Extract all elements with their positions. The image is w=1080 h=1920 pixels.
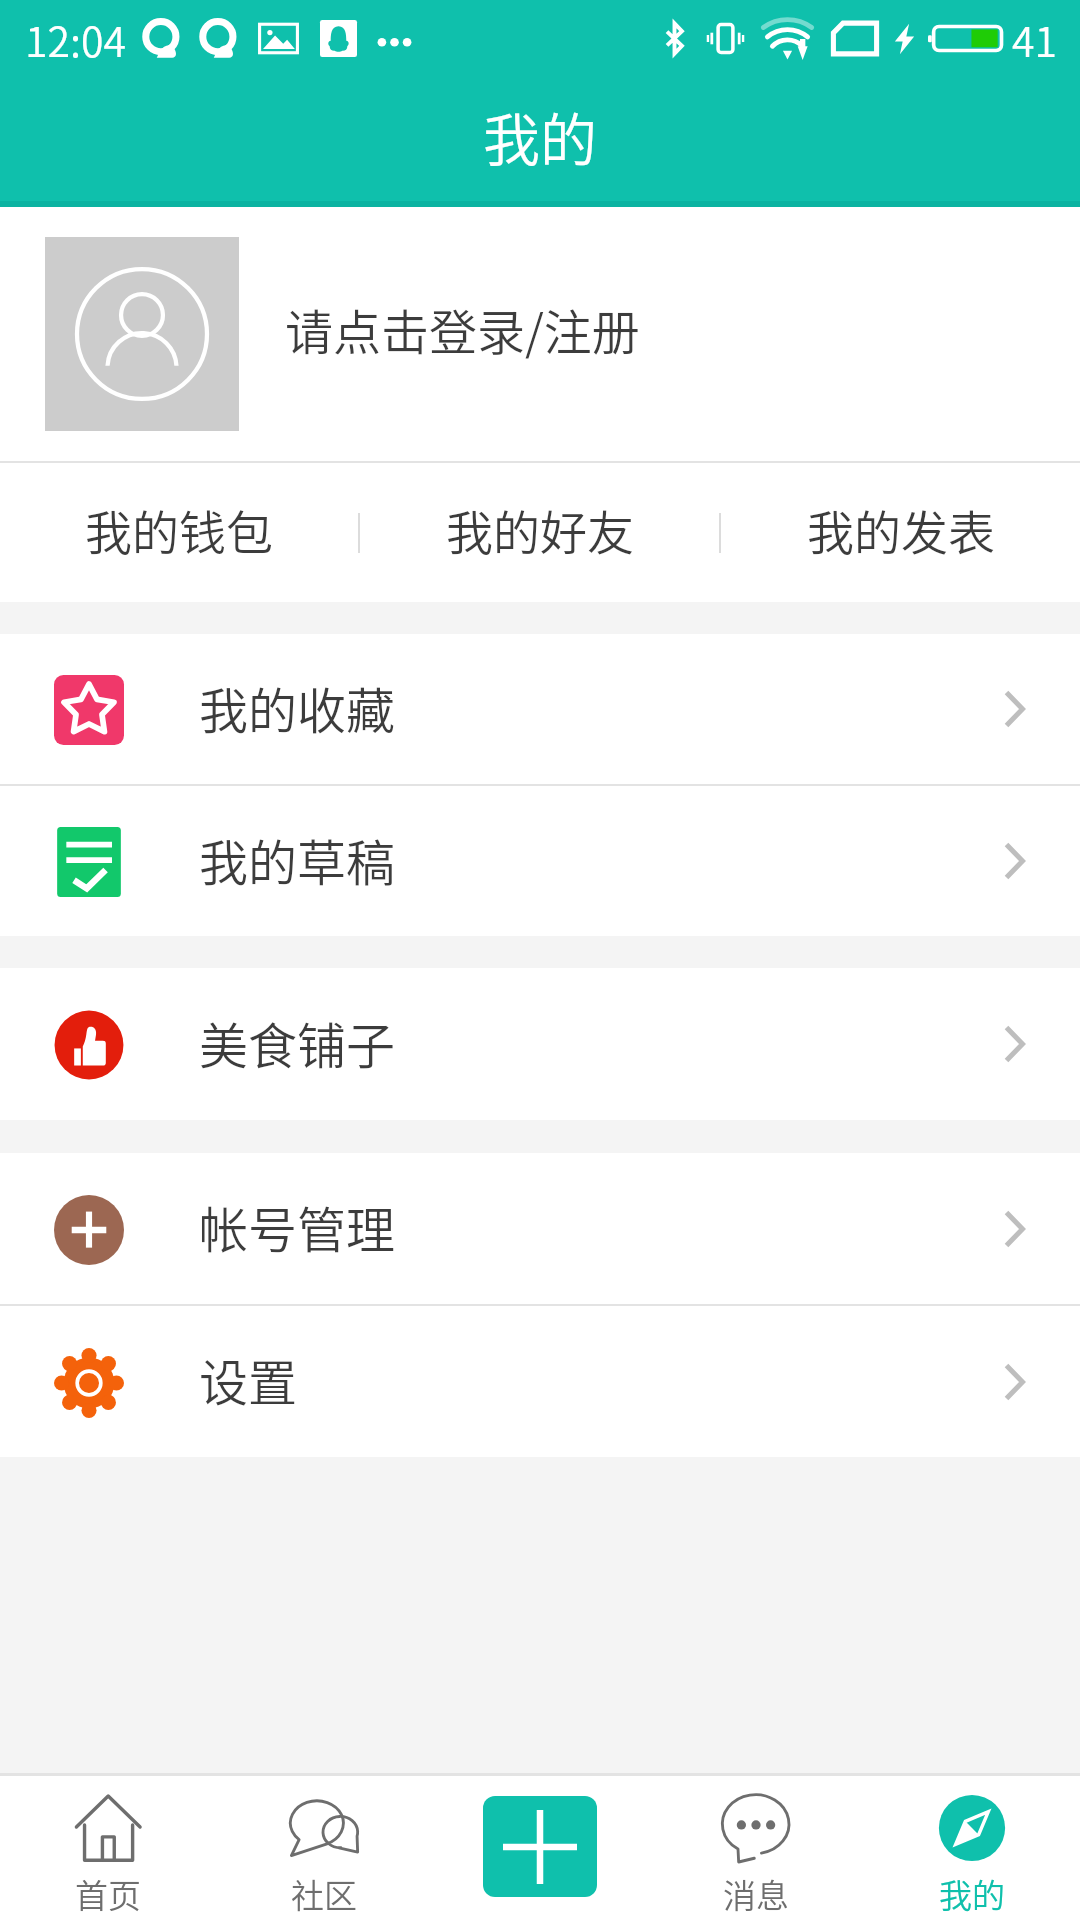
button[interactable]: 设置 xyxy=(0,1306,1080,1457)
button[interactable]: 我的发表 xyxy=(721,463,1080,602)
button[interactable]: 我的 xyxy=(864,1776,1080,1920)
staticText: 我的发表 xyxy=(807,495,995,563)
staticText: 我的 xyxy=(483,95,597,178)
button[interactable]: 美食铺子 xyxy=(0,968,1080,1120)
staticText: 消息 xyxy=(723,1870,789,1918)
button[interactable]: 我的好友 xyxy=(360,463,719,602)
staticText: 我的收藏 xyxy=(199,672,396,743)
staticText: 社区 xyxy=(291,1870,357,1918)
button[interactable]: 我的草稿 xyxy=(0,786,1080,936)
button[interactable]: 请点击登录/注册 xyxy=(0,207,1080,461)
staticText: 请点击登录/注册 xyxy=(285,294,640,364)
staticText: 我的草稿 xyxy=(199,824,396,895)
staticText: 美食铺子 xyxy=(199,1007,396,1078)
staticText: 我的 xyxy=(939,1870,1005,1918)
staticText: 设置 xyxy=(199,1344,298,1415)
button[interactable]: 我的收藏 xyxy=(0,634,1080,784)
staticText: 首页 xyxy=(75,1870,141,1918)
button[interactable]: 社区 xyxy=(216,1776,432,1920)
button[interactable]: 帐号管理 xyxy=(0,1153,1080,1304)
staticText: 12:04 xyxy=(25,9,127,68)
staticText: 帐号管理 xyxy=(199,1191,396,1262)
staticText: 41 xyxy=(1012,9,1058,68)
staticText: 我的好友 xyxy=(446,495,634,563)
button[interactable]: 消息 xyxy=(648,1776,864,1920)
button[interactable]: Add post xyxy=(483,1796,597,1897)
button[interactable]: 首页 xyxy=(0,1776,216,1920)
staticText: 我的钱包 xyxy=(85,495,273,563)
button[interactable]: 我的钱包 xyxy=(0,463,358,602)
